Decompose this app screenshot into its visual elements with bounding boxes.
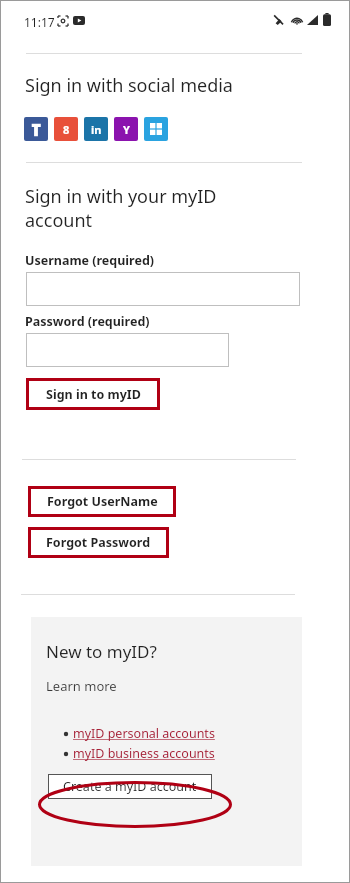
staticText: Sign in with your myID account	[25, 184, 217, 232]
staticText: Sign in to myID	[46, 386, 141, 403]
staticText: Forgot Password	[46, 534, 151, 551]
staticText: New to myID?	[46, 640, 157, 663]
staticText: myID business accounts	[73, 745, 215, 762]
staticText: Username (required)	[25, 252, 155, 269]
staticText: Learn more	[46, 677, 117, 695]
button[interactable]	[26, 333, 229, 367]
button[interactable]: Create a myID account	[48, 774, 212, 799]
button[interactable]: myID personal accounts	[61, 725, 215, 742]
button[interactable]: Google Plus	[54, 117, 78, 141]
staticText: myID personal accounts	[73, 725, 215, 742]
staticText: 11:17	[24, 14, 55, 30]
button[interactable]: Yahoo	[114, 117, 138, 141]
button[interactable]: Forgot UserName	[31, 489, 173, 514]
button[interactable]: Microsoft	[144, 117, 168, 141]
staticText: 8	[63, 122, 70, 137]
staticText: Forgot UserName	[47, 493, 158, 510]
staticText: in	[91, 122, 102, 137]
staticText: Sign in with social media	[25, 73, 233, 98]
button[interactable]: Forgot Password	[31, 530, 166, 555]
button[interactable]: Facebook	[24, 117, 48, 141]
staticText: Create a myID account	[63, 778, 197, 795]
button[interactable]: LinkedIn	[84, 117, 108, 141]
staticText: Y	[123, 122, 130, 137]
staticText: Password (required)	[25, 313, 150, 330]
button[interactable]	[26, 272, 300, 306]
button[interactable]: myID business accounts	[61, 745, 215, 762]
button[interactable]: Sign in to myID	[29, 381, 157, 407]
